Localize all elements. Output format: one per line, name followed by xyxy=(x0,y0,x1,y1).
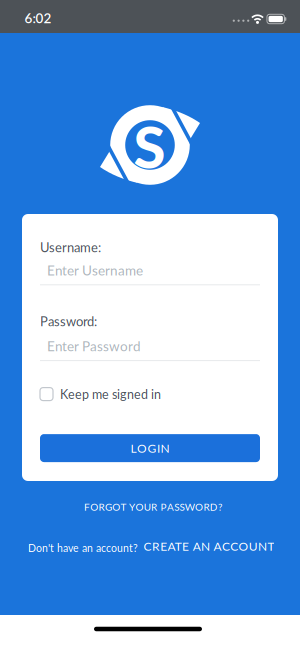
button[interactable]: LOGIN xyxy=(40,434,260,462)
staticText: CREATE AN ACCOUNT xyxy=(144,539,274,553)
staticText: 6:02 xyxy=(24,10,51,26)
staticText: Don't have an account? xyxy=(28,542,138,554)
staticText: LOGIN xyxy=(130,441,169,455)
button[interactable]: Keep me signed in xyxy=(40,387,161,402)
staticText: FORGOT YOUR PASSWORD? xyxy=(84,501,222,513)
button[interactable]: Enter Password xyxy=(40,338,260,361)
staticText: S xyxy=(133,111,165,181)
staticText: Username: xyxy=(40,239,101,255)
staticText: Password: xyxy=(40,313,97,329)
staticText: Enter Password xyxy=(47,338,141,354)
button[interactable]: CREATE AN ACCOUNT xyxy=(144,539,274,553)
staticText: Keep me signed in xyxy=(60,387,161,402)
staticText: Enter Username xyxy=(47,262,143,278)
button[interactable]: Enter Username xyxy=(40,262,260,285)
button[interactable]: FORGOT YOUR PASSWORD? xyxy=(84,501,222,513)
